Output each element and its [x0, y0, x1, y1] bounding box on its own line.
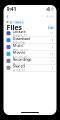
staticText: Yesterday [12, 41, 24, 44]
staticText: 3 [51, 45, 53, 49]
button[interactable]: Edit [47, 25, 53, 30]
button[interactable]: Recordings [3, 58, 56, 64]
button[interactable]: Music [3, 44, 56, 51]
button[interactable]: More [46, 12, 53, 20]
staticText: Movies [12, 49, 25, 55]
staticText: Lecture [12, 29, 25, 34]
staticText: ‹ [6, 12, 8, 20]
staticText: Music [12, 43, 23, 48]
staticText: Shared [12, 63, 24, 69]
staticText: Download [12, 36, 29, 41]
staticText: Today 9:41 [12, 34, 27, 38]
button[interactable]: Lecture [3, 30, 56, 37]
button[interactable]: Movies [3, 51, 56, 58]
staticText: ·ıll ⌾ [45, 5, 53, 13]
staticText: Recordings [12, 56, 31, 62]
staticText: 9:41 [6, 5, 16, 13]
staticText: Sat 11:15 [12, 62, 25, 65]
staticText: 5 [51, 59, 53, 63]
staticText: Files [6, 23, 21, 32]
staticText: Sun 18:30 [12, 55, 27, 58]
staticText: 9 [51, 66, 53, 69]
staticText: Browse [9, 19, 23, 25]
staticText: Fri 08:00 [12, 69, 25, 72]
staticText: ⋯ [46, 12, 53, 20]
staticText: 21 [49, 52, 53, 56]
button[interactable]: Back [6, 12, 8, 20]
button[interactable]: Shared [3, 64, 56, 71]
staticText: 8 [51, 38, 53, 42]
button[interactable]: Download [3, 37, 56, 44]
staticText: Edit [47, 25, 53, 30]
staticText: 12 [49, 31, 53, 35]
staticText: Mon 14:02 [12, 48, 28, 51]
